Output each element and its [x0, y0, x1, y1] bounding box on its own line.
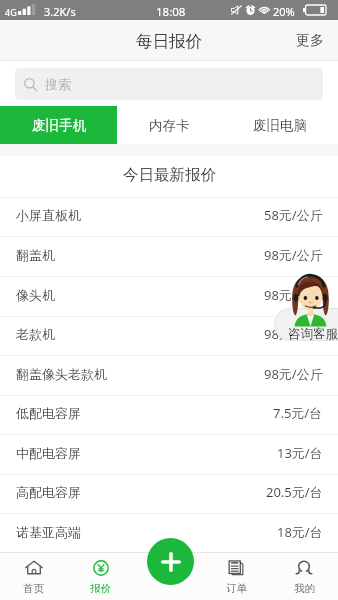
- staticText: 98元/公斤: [264, 246, 323, 264]
- staticText: 诺基亚高端: [16, 524, 81, 540]
- button[interactable]: 订单: [202, 552, 270, 600]
- staticText: 翻盖机: [16, 247, 55, 263]
- button[interactable]: 翻盖像头老款机: [0, 356, 338, 395]
- button[interactable]: Add: [147, 538, 194, 585]
- staticText: 咨询客服: [288, 326, 338, 342]
- staticText: 20.5元/台: [266, 483, 323, 501]
- staticText: 98元/公斤: [264, 286, 323, 304]
- button[interactable]: 翻盖机: [0, 237, 338, 276]
- staticText: 98元/公斤: [264, 365, 323, 383]
- staticText: 废旧电脑: [253, 117, 307, 134]
- staticText: 订单: [226, 582, 247, 595]
- staticText: 13元/台: [277, 444, 323, 462]
- staticText: 更多: [296, 32, 324, 50]
- staticText: 58元/公斤: [264, 206, 323, 224]
- staticText: 像头机: [16, 287, 55, 303]
- staticText: 4G: [5, 6, 17, 18]
- staticText: 老款机: [16, 326, 55, 342]
- button[interactable]: 低配电容屏: [0, 396, 338, 434]
- staticText: 报价: [90, 582, 111, 595]
- button[interactable]: 首页: [0, 552, 67, 600]
- staticText: 今日最新报价: [123, 165, 216, 185]
- staticText: 20%: [273, 4, 295, 19]
- staticText: 每日报价: [136, 31, 202, 52]
- button[interactable]: 废旧电脑: [221, 106, 338, 144]
- button[interactable]: 老款机: [0, 317, 338, 355]
- staticText: 我的: [294, 582, 315, 595]
- staticText: 98元/公斤: [264, 325, 323, 343]
- button[interactable]: 我的: [270, 552, 338, 600]
- staticText: 低配电容屏: [16, 405, 81, 421]
- staticText: 搜索: [45, 76, 71, 92]
- button[interactable]: 搜索: [15, 68, 323, 100]
- staticText: 18:08: [156, 4, 186, 20]
- button[interactable]: 中配电容屏: [0, 435, 338, 474]
- staticText: 翻盖像头老款机: [16, 366, 107, 382]
- button[interactable]: 废旧手机: [0, 106, 117, 144]
- staticText: 小屏直板机: [16, 207, 81, 223]
- button[interactable]: 更多: [282, 22, 338, 60]
- staticText: 中配电容屏: [16, 445, 81, 461]
- staticText: 内存卡: [149, 117, 190, 134]
- button[interactable]: 高配电容屏: [0, 475, 338, 513]
- button[interactable]: 像头机: [0, 277, 338, 316]
- staticText: 18元/台: [277, 523, 323, 541]
- button[interactable]: 诺基亚高端: [0, 514, 338, 553]
- staticText: 3.2K/s: [44, 4, 76, 19]
- button[interactable]: 小屏直板机: [0, 198, 338, 236]
- staticText: 废旧手机: [32, 117, 86, 134]
- staticText: 首页: [23, 582, 44, 595]
- staticText: 高配电容屏: [16, 484, 81, 500]
- button[interactable]: 报价: [67, 552, 134, 600]
- button[interactable]: 咨询客服: [272, 273, 338, 341]
- staticText: 7.5元/台: [273, 404, 323, 422]
- button[interactable]: 内存卡: [117, 106, 221, 144]
